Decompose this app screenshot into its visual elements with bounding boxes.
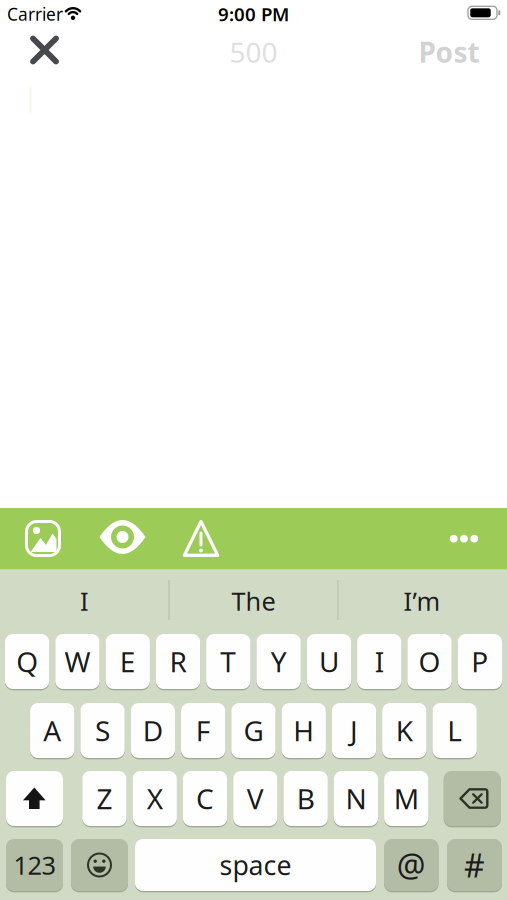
button[interactable]: U: [307, 632, 351, 690]
button[interactable]: D: [131, 701, 175, 759]
button[interactable]: B: [283, 769, 328, 827]
button[interactable]: Q: [5, 632, 49, 690]
button[interactable]: [71, 837, 128, 892]
staticText: #: [464, 844, 485, 886]
button[interactable]: space: [135, 837, 376, 892]
button[interactable]: Post: [409, 30, 489, 74]
button[interactable]: E: [106, 632, 150, 690]
button[interactable]: [22, 28, 66, 72]
staticText: R: [169, 643, 186, 680]
staticText: Z: [96, 780, 112, 817]
staticText: 123: [13, 848, 55, 882]
staticText: 9:00 PM: [218, 2, 289, 26]
button[interactable]: [177, 516, 225, 560]
staticText: J: [350, 712, 358, 749]
staticText: W: [64, 643, 90, 680]
button[interactable]: S: [80, 701, 125, 759]
staticText: H: [293, 712, 314, 749]
staticText: P: [471, 643, 488, 680]
staticText: M: [394, 780, 419, 817]
staticText: 500: [229, 33, 277, 71]
staticText: I’m: [403, 584, 440, 618]
button[interactable]: J: [332, 701, 376, 759]
staticText: Y: [271, 643, 287, 680]
staticText: F: [196, 712, 211, 749]
button[interactable]: [97, 516, 147, 560]
button[interactable]: I’m: [342, 573, 502, 629]
button[interactable]: Y: [256, 632, 301, 690]
staticText: T: [220, 643, 236, 680]
button[interactable]: [444, 769, 501, 827]
staticText: Carrier: [7, 2, 63, 25]
button[interactable]: F: [181, 701, 225, 759]
button[interactable]: L: [432, 701, 477, 759]
button[interactable]: [21, 516, 65, 560]
staticText: K: [396, 712, 413, 749]
button[interactable]: P: [458, 632, 502, 690]
staticText: @: [397, 844, 426, 886]
staticText: G: [243, 712, 263, 749]
button[interactable]: Z: [82, 769, 127, 827]
staticText: X: [147, 780, 163, 817]
staticText: L: [447, 712, 462, 749]
staticText: S: [95, 712, 110, 749]
staticText: D: [143, 712, 163, 749]
button[interactable]: C: [183, 769, 227, 827]
button[interactable]: X: [133, 769, 177, 827]
staticText: I: [375, 643, 384, 680]
button[interactable]: [442, 516, 486, 560]
staticText: U: [319, 643, 339, 680]
button[interactable]: I: [357, 632, 401, 690]
staticText: C: [196, 780, 214, 817]
staticText: A: [43, 712, 61, 749]
button[interactable]: The: [173, 573, 333, 629]
staticText: B: [297, 780, 315, 817]
button[interactable]: O: [407, 632, 452, 690]
button[interactable]: N: [334, 769, 378, 827]
staticText: N: [345, 780, 366, 817]
staticText: E: [120, 643, 136, 680]
staticText: V: [247, 780, 264, 817]
staticText: The: [231, 584, 275, 618]
button[interactable]: G: [231, 701, 276, 759]
button[interactable]: 123: [6, 837, 63, 892]
button[interactable]: M: [384, 769, 428, 827]
button[interactable]: T: [206, 632, 250, 690]
button[interactable]: I: [4, 573, 164, 629]
button[interactable]: V: [233, 769, 277, 827]
button[interactable]: [6, 769, 63, 827]
button[interactable]: A: [30, 701, 74, 759]
staticText: I: [80, 584, 89, 618]
staticText: Post: [418, 33, 479, 71]
staticText: Q: [16, 643, 38, 680]
button[interactable]: W: [55, 632, 100, 690]
button[interactable]: R: [156, 632, 200, 690]
staticText: space: [219, 847, 291, 883]
button[interactable]: #: [447, 837, 502, 892]
button[interactable]: K: [382, 701, 426, 759]
staticText: O: [418, 643, 440, 680]
button[interactable]: H: [282, 701, 326, 759]
button[interactable]: @: [384, 837, 439, 892]
